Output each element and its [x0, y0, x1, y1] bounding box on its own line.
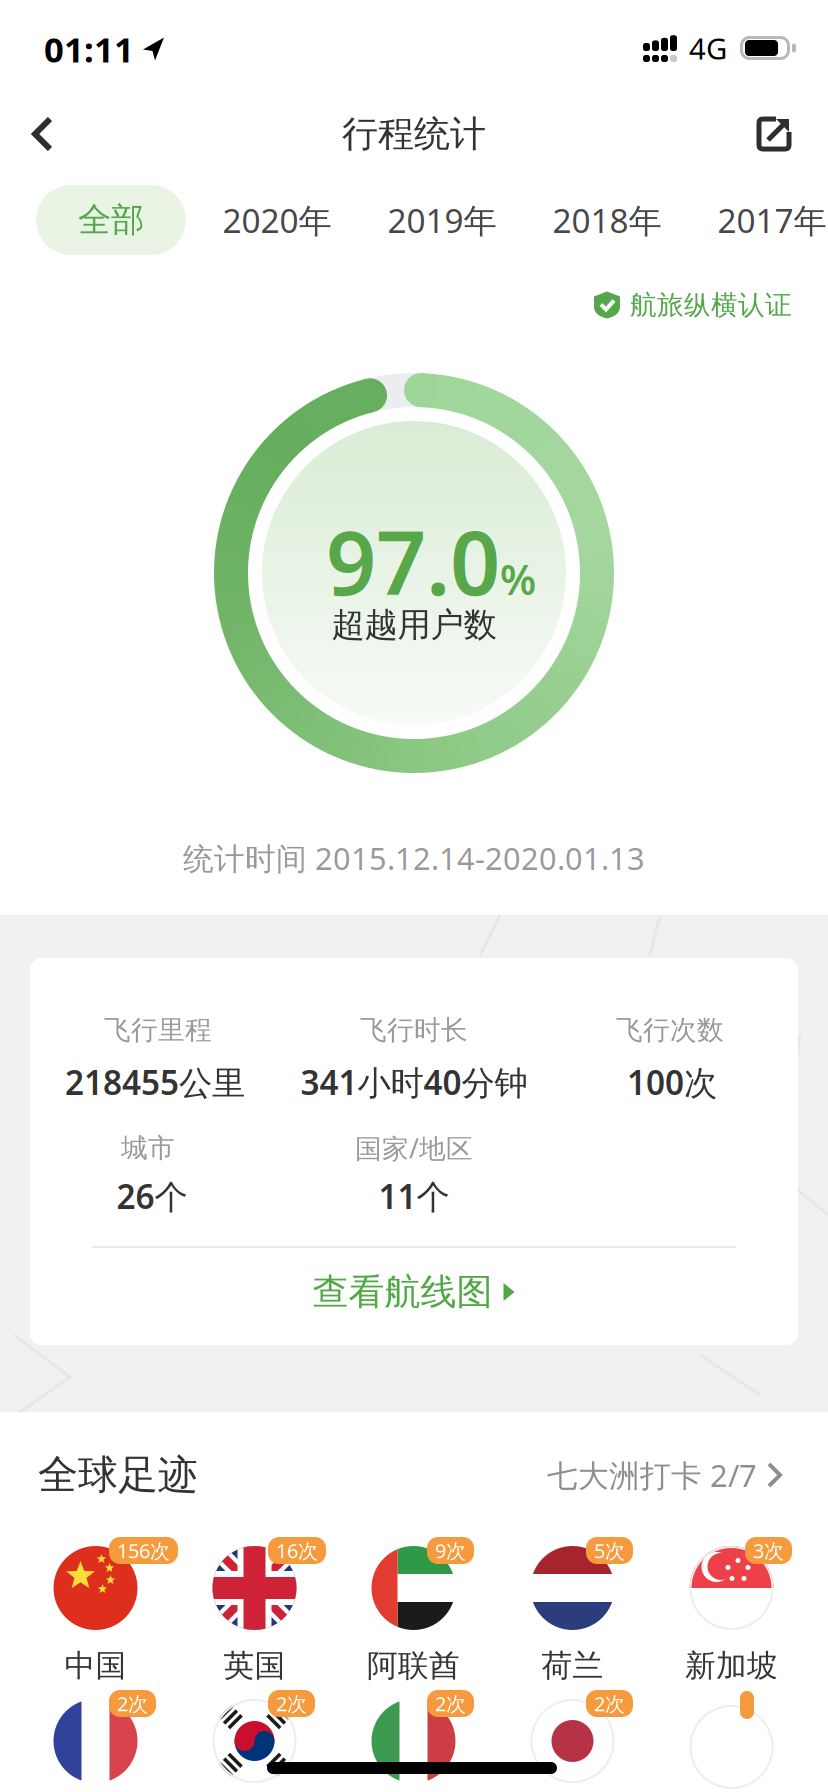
staticText: 全球足迹 [38, 1450, 198, 1499]
button[interactable]: 中国 [16, 1537, 175, 1687]
staticText: 行程统计 [342, 112, 486, 156]
button[interactable]: 2018年 [532, 185, 682, 255]
staticText: 统计时间 2015.12.14-2020.01.13 [183, 838, 645, 878]
button[interactable]: 2020年 [202, 185, 352, 255]
staticText: 9次 [435, 1537, 466, 1564]
staticText: 2次 [435, 1690, 466, 1717]
staticText: 七大洲打卡 2/7 [547, 1455, 757, 1495]
staticText: 100次 [627, 1060, 717, 1104]
button[interactable]: 法国 [16, 1690, 175, 1792]
staticText: 航旅纵横认证 [630, 289, 792, 321]
button[interactable]: 七大洲打卡 2/7 [547, 1455, 782, 1495]
staticText: 飞行时长 [360, 1014, 468, 1046]
button[interactable]: Share [744, 104, 804, 164]
staticText: 英国 [223, 1647, 285, 1685]
staticText: 2018年 [552, 198, 661, 242]
staticText: 新加坡 [685, 1647, 778, 1685]
staticText: 2017年 [717, 198, 826, 242]
staticText: 341小时40分钟 [300, 1060, 527, 1104]
staticText: 超越用户数 [331, 604, 496, 645]
staticText: % [500, 552, 536, 606]
button[interactable]: 日本 [493, 1690, 652, 1792]
staticText: 26个 [116, 1174, 187, 1218]
button[interactable]: 荷兰 [493, 1537, 652, 1687]
staticText: 2次 [276, 1690, 307, 1717]
staticText: 3次 [753, 1537, 784, 1564]
staticText: 2次 [594, 1690, 625, 1717]
staticText: 5次 [594, 1537, 625, 1564]
staticText: 97.0 [326, 503, 500, 619]
button[interactable]: 2019年 [367, 185, 517, 255]
staticText: 11个 [378, 1174, 449, 1218]
button[interactable]: 新加坡 [652, 1537, 811, 1687]
staticText: 荷兰 [541, 1647, 603, 1685]
staticText: 218455公里 [65, 1060, 245, 1104]
staticText: 2019年 [387, 198, 496, 242]
button[interactable]: 意大利 [334, 1690, 493, 1792]
staticText: 全部 [78, 199, 144, 240]
staticText: 飞行次数 [616, 1014, 724, 1046]
button[interactable]: 查看航线图 [204, 1252, 624, 1332]
staticText: 中国 [64, 1647, 126, 1685]
staticText: 查看航线图 [312, 1270, 492, 1314]
button[interactable]: 英国 [175, 1537, 334, 1687]
staticText: 2次 [117, 1690, 148, 1717]
staticText: 156次 [117, 1537, 170, 1564]
button[interactable]: 全部 [36, 185, 186, 255]
button[interactable]: 阿联酋 [334, 1537, 493, 1687]
staticText: 2020年 [222, 198, 331, 242]
staticText: 飞行里程 [104, 1014, 212, 1046]
staticText: 4G [689, 28, 727, 67]
button[interactable]: Back [18, 102, 68, 166]
button[interactable]: 2017年 [697, 185, 828, 255]
staticText: 国家/地区 [355, 1130, 473, 1166]
staticText: 16次 [276, 1537, 318, 1564]
button[interactable]: 韩国 [175, 1690, 334, 1792]
staticText: 城市 [121, 1132, 175, 1164]
staticText: 阿联酋 [367, 1647, 460, 1685]
staticText: 01:11 [44, 26, 134, 72]
